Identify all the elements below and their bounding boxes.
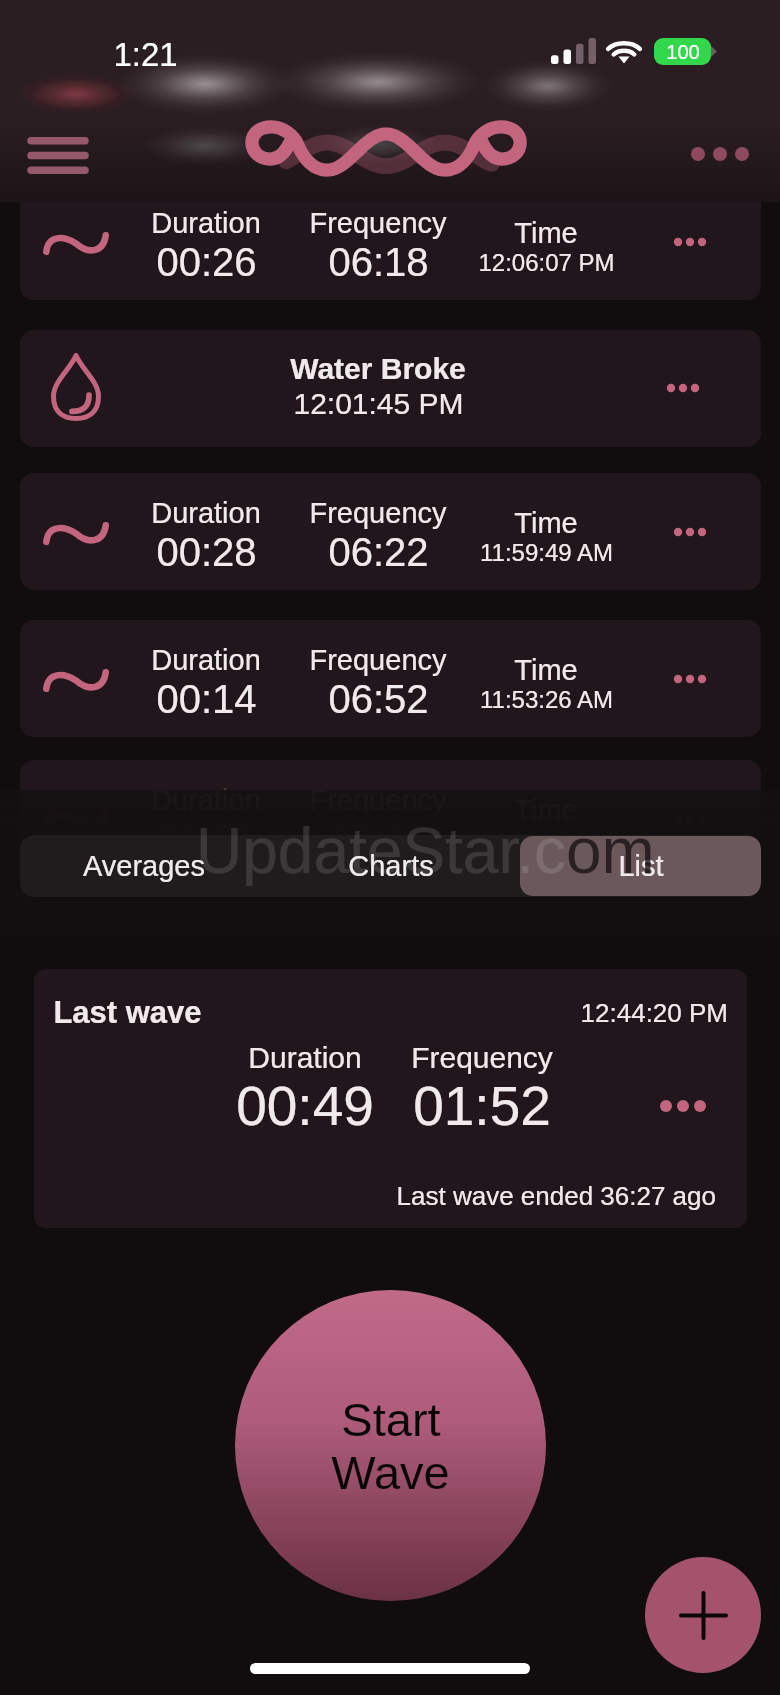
staticText: Wave	[331, 1446, 450, 1499]
staticText: 00:21	[156, 817, 257, 862]
staticText: 12:06:07 PM	[478, 249, 615, 276]
staticText: Last wave ended 36:27 ago	[364, 1181, 716, 1210]
staticText: Time	[514, 217, 578, 249]
staticText: Frequency	[309, 644, 447, 676]
button[interactable]: Duration	[20, 760, 761, 877]
button[interactable]: Start	[235, 1290, 546, 1601]
staticText: 1:21	[113, 36, 178, 73]
staticText: Duration	[248, 1041, 362, 1075]
staticText: 11:53:26 AM	[480, 686, 613, 713]
staticText: Duration	[151, 497, 261, 529]
staticText: Charts	[348, 850, 434, 882]
button[interactable]: Duration	[20, 473, 761, 590]
button[interactable]: More options	[650, 650, 730, 708]
staticText: Frequency	[411, 1041, 553, 1075]
staticText: 00:28	[156, 530, 257, 575]
button[interactable]: Duration	[20, 620, 761, 737]
button[interactable]: More options	[650, 213, 730, 271]
staticText: Averages	[83, 850, 205, 882]
staticText: 12:01:45 PM	[293, 387, 464, 421]
button[interactable]: List	[520, 836, 761, 896]
staticText: UpdateStar.c	[196, 815, 566, 887]
staticText: 00:14	[156, 677, 257, 722]
staticText: Duration	[151, 644, 261, 676]
button[interactable]: Charts	[267, 835, 514, 897]
button[interactable]: More options	[650, 503, 730, 561]
staticText: 12:44:20 PM	[568, 998, 728, 1027]
staticText: om	[566, 815, 655, 887]
staticText: 100	[666, 41, 700, 63]
staticText: Frequency	[309, 784, 447, 816]
staticText: Duration	[151, 784, 261, 816]
staticText: 06:22	[328, 530, 429, 575]
staticText: Last wave	[53, 995, 202, 1030]
staticText: 01:52	[413, 1075, 551, 1136]
staticText: List	[618, 850, 664, 882]
button[interactable]: More options	[645, 1077, 721, 1135]
staticText: 06:52	[328, 677, 429, 722]
staticText: Duration	[151, 207, 261, 239]
staticText: Frequency	[309, 497, 447, 529]
staticText: 11:59:49 AM	[480, 539, 613, 566]
button[interactable]: Last wave	[34, 969, 747, 1228]
staticText: 00:49	[236, 1075, 374, 1136]
staticText: Start	[341, 1393, 441, 1446]
button[interactable]: Duration	[20, 183, 761, 300]
staticText: Time	[514, 507, 578, 539]
button[interactable]: Menu	[8, 118, 108, 192]
staticText: 07:02	[328, 817, 429, 862]
staticText: Time	[514, 654, 578, 686]
staticText: 11:46:10 AM	[480, 826, 613, 853]
button[interactable]: Water Broke	[20, 330, 761, 447]
staticText: Water Broke	[290, 352, 466, 386]
button[interactable]: Add	[645, 1557, 761, 1673]
staticText: 00:26	[156, 240, 257, 285]
staticText: 06:18	[328, 240, 429, 285]
button[interactable]: More options	[643, 359, 723, 417]
button[interactable]: More options	[650, 790, 730, 848]
button[interactable]: Averages	[20, 835, 267, 897]
staticText: Frequency	[309, 207, 447, 239]
button[interactable]: More	[672, 124, 768, 184]
